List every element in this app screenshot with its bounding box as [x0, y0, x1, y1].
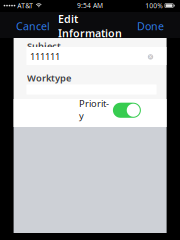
staticText: Done [137, 19, 164, 33]
button[interactable]: Cancel [16, 21, 56, 31]
button[interactable]: Clear text [148, 54, 153, 60]
button[interactable]: Priority [113, 103, 141, 118]
staticText: Priority [79, 97, 109, 122]
staticText: Edit Information [58, 12, 122, 40]
staticText: Worktype [27, 72, 71, 84]
staticText: 9:54 AM [77, 1, 103, 10]
button[interactable]: Done [130, 21, 164, 31]
staticText: 100% [145, 1, 163, 10]
staticText: 111111 [30, 50, 60, 63]
staticText: Cancel [16, 19, 50, 33]
staticText: AT&T [17, 1, 33, 10]
staticText: × [148, 52, 152, 61]
staticText: Subject [27, 40, 61, 52]
